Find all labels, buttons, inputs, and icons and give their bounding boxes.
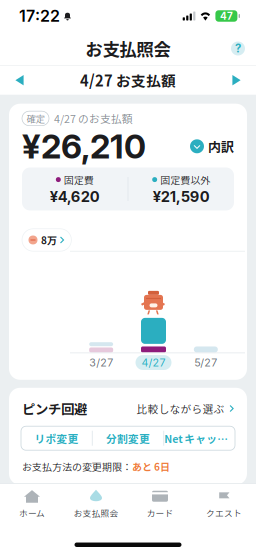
staticText: 確定 <box>26 112 44 125</box>
staticText: 分割変更 <box>106 430 150 446</box>
staticText: 固定費以外 <box>160 172 210 187</box>
staticText: お支払照会 <box>73 507 118 519</box>
button[interactable]: 内訳 <box>190 134 234 159</box>
staticText: 内訳 <box>208 137 234 156</box>
staticText: リボ変更 <box>34 430 78 446</box>
button[interactable]: Net キャッシング <box>164 426 235 450</box>
button[interactable]: カード <box>128 483 192 525</box>
staticText: カード <box>146 507 173 519</box>
staticText: ホーム <box>19 507 45 519</box>
staticText: 4/27 のお支払額 <box>54 111 133 126</box>
staticText: ピンチ回避 <box>22 399 87 418</box>
staticText: あと 6日 <box>132 459 170 474</box>
staticText: ¥26,210 <box>22 126 146 166</box>
staticText: 4/27 <box>141 356 165 369</box>
staticText: 5/27 <box>194 356 217 369</box>
button[interactable]: リボ変更 <box>21 426 92 450</box>
staticText: 8万 <box>41 233 57 247</box>
button[interactable]: 翌月 <box>224 69 249 92</box>
button[interactable]: クエスト <box>192 483 256 525</box>
staticText: お支払照会 <box>85 36 170 61</box>
staticText: 固定費 <box>64 172 94 187</box>
staticText: 4/27 お支払額 <box>80 70 176 91</box>
staticText: お支払方法の変更期限： <box>22 459 132 474</box>
staticText: ¥4,620 <box>50 188 100 205</box>
staticText: 17:22 <box>19 6 60 26</box>
button[interactable]: ヘルプ <box>227 37 249 59</box>
staticText: ? <box>235 42 241 55</box>
button[interactable]: ホーム <box>0 483 64 525</box>
staticText: Net キャッシング <box>164 430 235 446</box>
staticText: 47 <box>220 10 233 22</box>
button[interactable]: 8万 <box>22 229 71 251</box>
button[interactable]: お支払照会 <box>64 483 128 525</box>
staticText: ¥21,590 <box>153 188 210 205</box>
button[interactable]: 比較しながら選ぶ <box>137 399 234 418</box>
button[interactable]: 前月 <box>7 69 32 92</box>
staticText: 比較しながら選ぶ <box>137 401 225 416</box>
staticText: 3/27 <box>89 356 113 369</box>
staticText: クエスト <box>206 507 242 519</box>
button[interactable]: 分割変更 <box>93 426 163 450</box>
